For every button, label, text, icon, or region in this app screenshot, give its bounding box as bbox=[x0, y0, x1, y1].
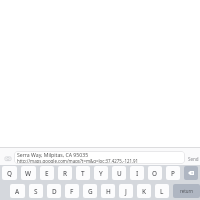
staticText: P bbox=[171, 169, 175, 178]
staticText: A bbox=[15, 187, 20, 196]
staticText: F bbox=[70, 187, 74, 196]
staticText: Send bbox=[188, 156, 199, 162]
staticText: I bbox=[136, 169, 139, 178]
button[interactable]: O bbox=[148, 166, 162, 180]
button[interactable]: H bbox=[101, 184, 115, 198]
button[interactable]: D bbox=[47, 184, 61, 198]
button[interactable]: E bbox=[40, 166, 54, 180]
staticText: D bbox=[52, 187, 57, 196]
button[interactable]: Backspace bbox=[184, 166, 198, 180]
staticText: W bbox=[25, 169, 32, 178]
button[interactable]: Send bbox=[184, 147, 200, 165]
staticText: Y bbox=[99, 169, 103, 178]
button[interactable]: G bbox=[83, 184, 97, 198]
button[interactable]: J bbox=[119, 184, 133, 198]
button[interactable]: L bbox=[155, 184, 169, 198]
staticText: U bbox=[117, 169, 122, 178]
staticText: G bbox=[88, 187, 93, 196]
button[interactable]: S bbox=[29, 184, 43, 198]
staticText: O bbox=[152, 169, 158, 178]
staticText: R bbox=[63, 169, 68, 178]
button[interactable]: T bbox=[76, 166, 90, 180]
button[interactable]: A bbox=[10, 184, 25, 198]
button[interactable]: Q bbox=[2, 166, 17, 180]
staticText: S bbox=[34, 187, 38, 196]
staticText: H bbox=[106, 187, 111, 196]
button[interactable]: Add attachment bbox=[0, 147, 14, 165]
button[interactable]: P bbox=[166, 166, 180, 180]
button[interactable]: R bbox=[58, 166, 72, 180]
button[interactable]: U bbox=[112, 166, 126, 180]
button[interactable]: I bbox=[130, 166, 144, 180]
button[interactable]: W bbox=[21, 166, 36, 180]
staticText: T bbox=[81, 169, 85, 178]
staticText: Serra Way, Milpitas, CA 95035 bbox=[17, 151, 89, 158]
button[interactable]: return bbox=[173, 184, 200, 198]
staticText: J bbox=[125, 187, 127, 196]
staticText: return bbox=[180, 188, 194, 194]
staticText: K bbox=[142, 187, 147, 196]
button[interactable]: Y bbox=[94, 166, 108, 180]
staticText: http://maps.google.com/maps?t=m&q=loc:37… bbox=[17, 158, 139, 164]
staticText: E bbox=[45, 169, 49, 178]
button[interactable]: K bbox=[137, 184, 151, 198]
button[interactable]: Serra Way, Milpitas, CA 95035 bbox=[14, 151, 185, 164]
staticText: Q bbox=[7, 169, 13, 178]
staticText: L bbox=[160, 187, 164, 196]
button[interactable]: F bbox=[65, 184, 79, 198]
